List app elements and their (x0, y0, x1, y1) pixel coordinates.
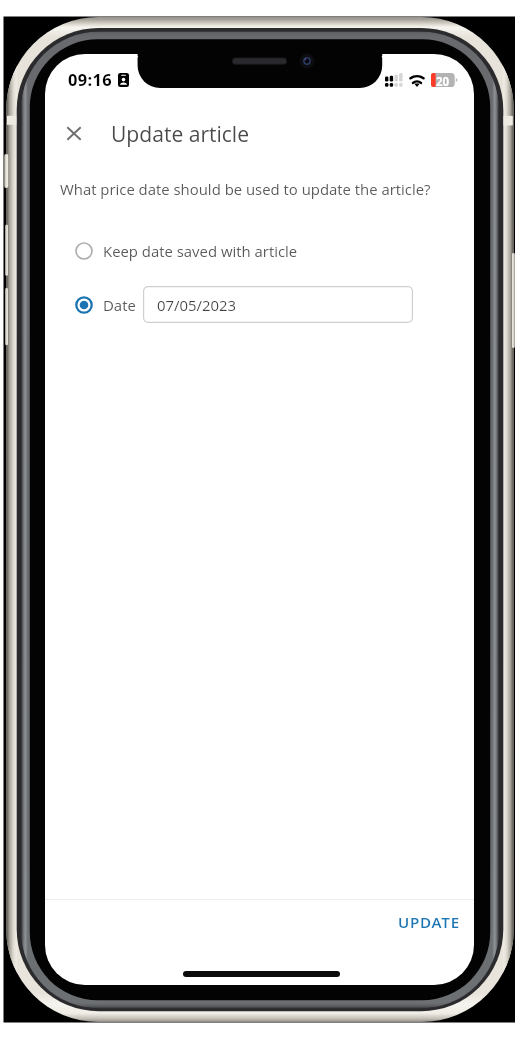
staticText: Update article (111, 119, 250, 148)
staticText: UPDATE (398, 912, 460, 933)
staticText: Keep date saved with article (103, 241, 298, 261)
staticText: What price date should be used to update… (60, 179, 431, 199)
staticText: 20 (436, 74, 450, 90)
button[interactable]: Keep date saved with article (45, 238, 474, 264)
button[interactable]: Use date (75, 296, 93, 314)
button[interactable]: 07/05/2023 (143, 286, 413, 323)
staticText: 09:16 (68, 68, 112, 90)
button[interactable]: Close (56, 115, 92, 151)
staticText: 07/05/2023 (157, 295, 237, 315)
button[interactable]: UPDATE (390, 905, 468, 940)
staticText: Date (103, 295, 136, 315)
